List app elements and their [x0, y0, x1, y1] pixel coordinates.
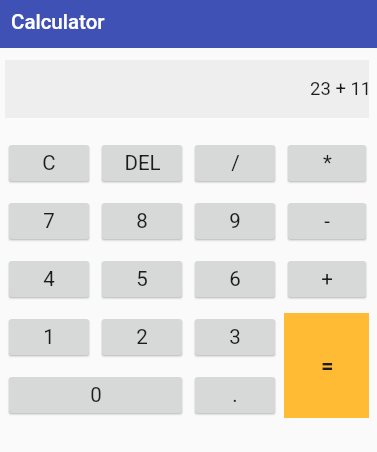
- staticText: 7: [43, 209, 55, 233]
- button[interactable]: 7: [9, 203, 89, 239]
- staticText: 5: [136, 267, 148, 291]
- staticText: 8: [136, 209, 148, 233]
- staticText: Calculator: [11, 10, 105, 34]
- staticText: +: [321, 267, 333, 291]
- staticText: -: [324, 209, 330, 233]
- button[interactable]: 9: [195, 203, 275, 239]
- button[interactable]: =: [284, 313, 369, 418]
- staticText: .: [232, 383, 238, 407]
- staticText: 2: [136, 325, 148, 349]
- staticText: 1: [43, 325, 55, 349]
- button[interactable]: 3: [195, 319, 275, 355]
- staticText: C: [42, 151, 56, 175]
- button[interactable]: +: [288, 261, 366, 297]
- button[interactable]: 1: [9, 319, 89, 355]
- button[interactable]: 5: [102, 261, 182, 297]
- staticText: /: [231, 151, 240, 175]
- staticText: *: [323, 151, 332, 175]
- button[interactable]: *: [288, 145, 366, 181]
- button[interactable]: 4: [9, 261, 89, 297]
- button[interactable]: .: [195, 377, 275, 413]
- button[interactable]: 8: [102, 203, 182, 239]
- staticText: =: [321, 353, 334, 379]
- button[interactable]: DEL: [102, 145, 182, 181]
- staticText: 9: [229, 209, 241, 233]
- button[interactable]: -: [288, 203, 366, 239]
- staticText: 4: [43, 267, 55, 291]
- button[interactable]: /: [195, 145, 275, 181]
- staticText: 0: [90, 383, 102, 407]
- staticText: 3: [229, 325, 241, 349]
- staticText: 6: [229, 267, 241, 291]
- button[interactable]: 2: [102, 319, 182, 355]
- button[interactable]: 6: [195, 261, 275, 297]
- other: Expression display: [5, 60, 369, 118]
- button[interactable]: C: [9, 145, 89, 181]
- staticText: DEL: [124, 151, 161, 175]
- staticText: 23 + 11: [310, 78, 372, 100]
- button[interactable]: 0: [9, 377, 182, 413]
